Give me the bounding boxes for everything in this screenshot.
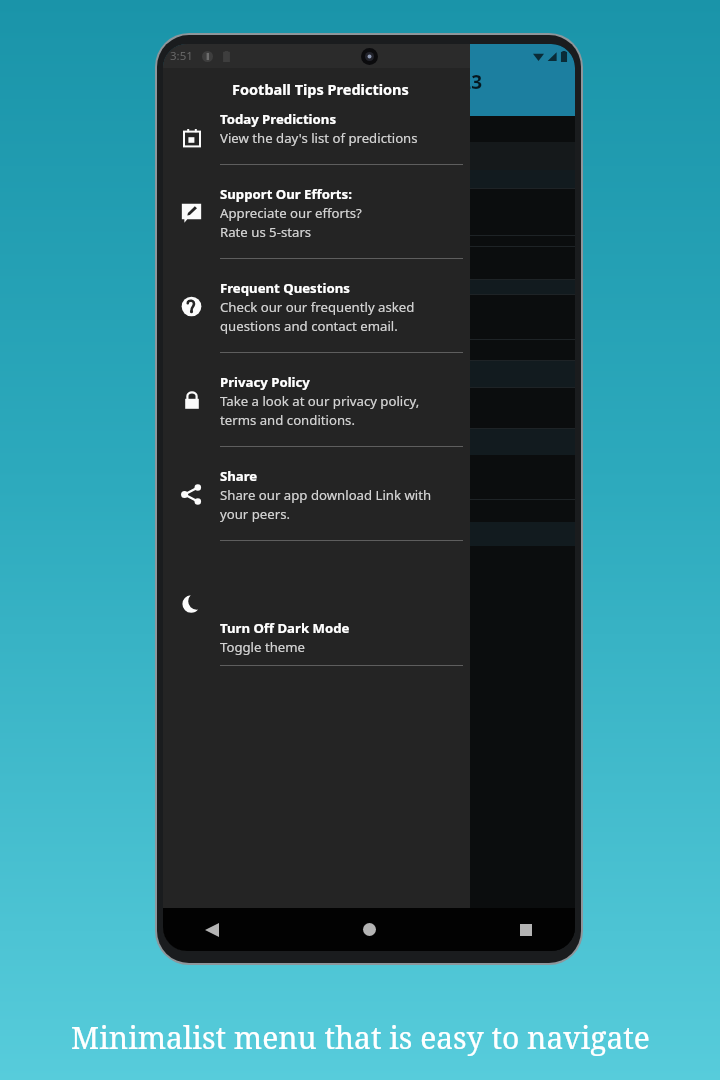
- staticText: Toggle theme: [220, 638, 305, 656]
- staticText: rites (7): [286, 145, 343, 167]
- other: Toggle theme: [182, 594, 202, 614]
- staticText: View the day's list of predictions: [220, 129, 418, 147]
- button[interactable]: Rate us five stars: [163, 165, 470, 259]
- other: Frequent Questions: [181, 296, 202, 317]
- other: Share: [181, 484, 202, 505]
- staticText: Frequent Questions: [220, 279, 350, 297]
- button[interactable]: Toggle theme: [163, 541, 470, 666]
- button[interactable]: Home: [346, 908, 392, 951]
- staticText: 29-07-2023: [310, 121, 376, 138]
- button[interactable]: Back: [189, 908, 235, 951]
- button[interactable]: Recent apps: [503, 908, 549, 951]
- button[interactable]: Today Predictions: [163, 110, 470, 165]
- staticText: Share: [220, 467, 258, 485]
- staticText: Share our app download Link with your pe…: [220, 486, 432, 522]
- staticText: Appreciate our efforts? Rate us 5-stars: [220, 204, 362, 240]
- button[interactable]: rites (7): [259, 143, 369, 168]
- button[interactable]: Privacy Policy: [163, 353, 470, 447]
- button[interactable]: Frequent Questions: [163, 259, 470, 353]
- other: Privacy Policy: [182, 390, 202, 410]
- staticText: Privacy Policy: [220, 373, 310, 391]
- other: Rate us five stars: [181, 202, 202, 223]
- staticText: Turn Off Dark Mode: [220, 619, 350, 637]
- staticText: Take a look at our privacy policy, terms…: [220, 392, 420, 428]
- staticText: 3:51: [170, 48, 193, 64]
- staticText: Support Our Efforts:: [220, 185, 352, 203]
- staticText: 29-07-2023: [383, 69, 483, 95]
- staticText: Today Predictions: [220, 110, 336, 128]
- button[interactable]: Share: [163, 447, 470, 541]
- staticText: Football Tips Predictions: [232, 79, 409, 99]
- staticText: Minimalist menu that is easy to navigate: [71, 1017, 650, 1058]
- other: Today Predictions: [182, 128, 202, 148]
- staticText: Check our our frequently asked questions…: [220, 298, 415, 334]
- staticText: up Stage: [287, 525, 348, 544]
- button[interactable]: 29-07-2023: [283, 119, 403, 140]
- staticText: eason: [287, 433, 329, 452]
